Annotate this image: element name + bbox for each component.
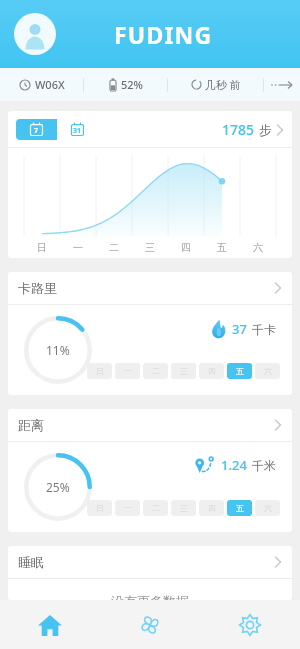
button[interactable]: 几秒 前 [168,68,263,101]
staticText: 二 [152,366,160,376]
staticText: 卡路里 [18,280,57,296]
staticText: 四 [181,241,191,254]
button[interactable]: 52% [84,68,167,101]
staticText: 四 [208,366,216,376]
staticText: 五 [217,241,227,254]
staticText: 三 [180,366,188,376]
button[interactable]: 六 [255,363,280,379]
staticText: 一 [124,503,132,513]
staticText: 几秒 前 [205,77,241,92]
staticText: 三 [145,241,155,254]
staticText: FUDING [114,19,213,50]
button[interactable]: Home [0,600,100,649]
staticText: 六 [253,241,263,254]
staticText: 二 [109,241,119,254]
staticText: 五 [236,503,244,513]
button[interactable]: W06X [0,68,83,101]
staticText: 千卡 [252,322,276,337]
staticText: 52% [121,77,143,92]
button[interactable]: Settings [200,600,300,649]
button[interactable]: 五 [227,500,252,516]
staticText: 日 [96,503,104,513]
staticText: 四 [208,503,216,513]
button[interactable]: 三 [171,500,196,516]
button[interactable]: Device [100,600,200,649]
staticText: 三 [180,503,188,513]
button[interactable]: More [264,68,300,101]
button[interactable]: 四 [199,500,224,516]
staticText: 六 [264,366,272,376]
staticText: 25% [46,479,70,495]
staticText: W06X [35,77,65,92]
staticText: 1.24 [221,456,247,474]
staticText: 31 [73,126,82,136]
button[interactable]: 睡眠 [8,546,292,578]
staticText: 没有更多数据 [111,593,189,600]
staticText: 千米 [252,458,276,473]
staticText: 日 [37,241,47,254]
staticText: 日 [96,366,104,376]
staticText: 六 [264,503,272,513]
staticText: 一 [124,366,132,376]
staticText: 二 [152,503,160,513]
staticText: 1785 [222,120,255,139]
button[interactable]: 三 [171,363,196,379]
button[interactable]: 日 [87,363,112,379]
button[interactable]: 五 [227,363,252,379]
button[interactable]: 四 [199,363,224,379]
button[interactable]: Profile [14,13,56,55]
staticText: 一 [73,241,83,254]
staticText: 睡眠 [18,554,44,570]
button[interactable]: 距离 [8,409,292,441]
button[interactable]: 日 [87,500,112,516]
staticText: 步 [259,122,272,138]
staticText: 11% [46,342,70,358]
button[interactable]: 六 [255,500,280,516]
button[interactable]: 7 days [16,119,57,140]
staticText: 7 [34,126,39,136]
staticText: 37 [232,320,247,338]
staticText: 五 [236,366,244,376]
button[interactable]: 31 days [57,119,98,140]
button[interactable]: 1785 [222,120,284,139]
button[interactable]: 卡路里 [8,272,292,304]
staticText: 距离 [18,417,44,433]
